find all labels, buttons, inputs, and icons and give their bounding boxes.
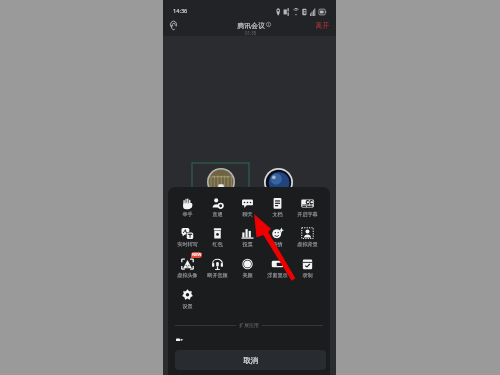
staticText: NEW	[192, 252, 202, 258]
button[interactable]: Speaker	[166, 19, 180, 33]
button[interactable]: 取消	[175, 350, 326, 370]
button[interactable]: 浮窗显示	[262, 258, 292, 285]
button[interactable]: 投票	[232, 227, 262, 254]
button[interactable]: NEW	[172, 258, 202, 285]
button[interactable]: 文档	[262, 197, 292, 224]
button[interactable]: 设置	[172, 289, 202, 316]
staticText: 浮窗显示	[267, 272, 288, 278]
staticText: 虚拟背景	[297, 241, 318, 247]
staticText: 14:36	[173, 7, 188, 15]
staticText: 举手	[182, 211, 193, 217]
staticText: 01:35	[245, 30, 257, 36]
staticText: 取消	[243, 356, 258, 365]
staticText: 开启字幕	[297, 211, 318, 217]
button[interactable]: 美颜	[232, 258, 262, 285]
button[interactable]: 实时转写	[172, 227, 202, 254]
staticText: 腾讯会议	[237, 21, 265, 30]
button[interactable]: 举手	[172, 197, 202, 224]
button[interactable]: 虚拟背景	[292, 227, 322, 254]
staticText: 虚拟头像	[177, 272, 198, 278]
staticText: 投票	[242, 241, 253, 247]
staticText: 直通	[212, 211, 223, 217]
staticText: 文档	[272, 211, 283, 217]
staticText: 录制	[302, 272, 313, 278]
staticText: 聊天	[242, 211, 253, 217]
staticText: 实时转写	[177, 241, 198, 247]
button[interactable]: 离开	[313, 20, 332, 31]
button[interactable]: 断开音频	[202, 258, 232, 285]
staticText: 美颜	[242, 272, 253, 278]
staticText: 红包	[212, 241, 223, 247]
staticText: 离开	[315, 21, 330, 30]
button[interactable]: 聊天	[232, 197, 262, 224]
staticText: 设置	[182, 303, 193, 309]
button[interactable]: 直通	[202, 197, 232, 224]
button[interactable]: 开启字幕	[292, 197, 322, 224]
staticText: 断开音频	[207, 272, 228, 278]
button[interactable]: 录制	[292, 258, 322, 285]
staticText: 表情	[272, 241, 283, 247]
button[interactable]: 红包	[202, 227, 232, 254]
button[interactable]: 表情	[262, 227, 292, 254]
staticText: 扩展应用	[239, 322, 259, 328]
